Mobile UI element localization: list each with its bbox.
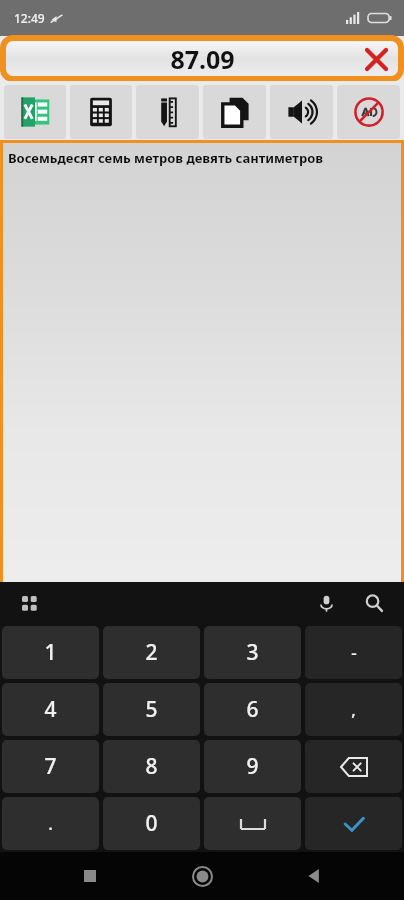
button[interactable]: , bbox=[305, 683, 402, 736]
button[interactable]: Backspace bbox=[305, 740, 402, 793]
button[interactable]: 87.09 bbox=[3, 38, 401, 79]
staticText: 12:49 bbox=[14, 10, 45, 26]
button[interactable]: Speak bbox=[270, 85, 333, 139]
button[interactable]: 6 bbox=[204, 683, 301, 736]
button[interactable]: Search bbox=[360, 589, 388, 617]
button[interactable]: 1 bbox=[2, 626, 99, 679]
staticText: 2 bbox=[145, 638, 158, 667]
button[interactable]: 9 bbox=[204, 740, 301, 793]
button[interactable]: Recent apps bbox=[68, 854, 112, 898]
button[interactable]: Home bbox=[180, 854, 224, 898]
staticText: 7 bbox=[44, 752, 57, 781]
staticText: 9 bbox=[246, 752, 259, 781]
button[interactable]: Voice input bbox=[312, 589, 340, 617]
button[interactable]: - bbox=[305, 626, 402, 679]
staticText: 1 bbox=[44, 638, 57, 667]
staticText: Восемьдесят семь метров девять сантиметр… bbox=[8, 149, 323, 167]
button[interactable]: 0 bbox=[103, 797, 200, 850]
button[interactable]: Keyboard layouts bbox=[16, 590, 42, 616]
button[interactable]: 2 bbox=[103, 626, 200, 679]
button[interactable]: Enter bbox=[305, 797, 402, 850]
button[interactable]: Space bbox=[204, 797, 301, 850]
button[interactable]: Clear bbox=[361, 44, 391, 74]
button[interactable]: No ads bbox=[337, 85, 400, 139]
button[interactable]: 3 bbox=[204, 626, 301, 679]
staticText: 3 bbox=[246, 638, 259, 667]
button[interactable]: Measure bbox=[136, 85, 199, 139]
button[interactable]: Back bbox=[292, 854, 336, 898]
button[interactable]: Copy bbox=[203, 85, 266, 139]
staticText: 0 bbox=[145, 809, 158, 838]
button[interactable]: Восемьдесят семь метров девять сантиметр… bbox=[3, 143, 401, 582]
button[interactable]: Calculator bbox=[70, 85, 132, 139]
button[interactable]: 5 bbox=[103, 683, 200, 736]
button[interactable]: . bbox=[2, 797, 99, 850]
staticText: 87.09 bbox=[170, 42, 235, 76]
staticText: - bbox=[351, 641, 357, 664]
staticText: , bbox=[351, 698, 356, 721]
staticText: 6 bbox=[246, 695, 259, 724]
button[interactable]: 7 bbox=[2, 740, 99, 793]
staticText: 4 bbox=[44, 695, 57, 724]
button[interactable]: 4 bbox=[2, 683, 99, 736]
staticText: 5 bbox=[145, 695, 158, 724]
staticText: 8 bbox=[145, 752, 158, 781]
button[interactable]: 8 bbox=[103, 740, 200, 793]
button[interactable]: Excel bbox=[4, 85, 66, 139]
staticText: . bbox=[48, 812, 53, 835]
